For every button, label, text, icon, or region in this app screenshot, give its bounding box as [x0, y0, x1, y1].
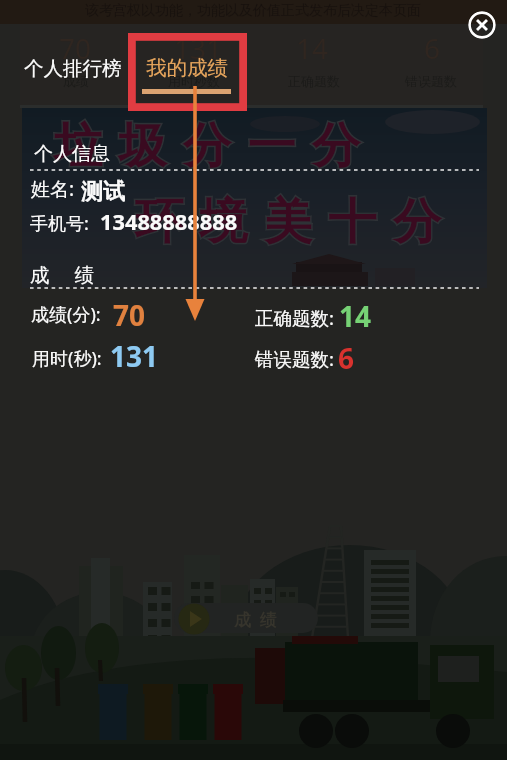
- staticText: 用时(秒):: [32, 346, 102, 371]
- staticText: 垃圾分一分: [54, 116, 377, 176]
- staticText: 成 绩: [30, 261, 95, 288]
- staticText: 垃圾分一分: [54, 116, 377, 176]
- staticText: 个人排行榜: [24, 56, 122, 81]
- staticText: 正确题数: [288, 73, 340, 89]
- staticText: 测试: [81, 178, 125, 206]
- staticText: 正确题数:: [255, 305, 334, 330]
- staticText: 姓名:: [31, 176, 75, 202]
- staticText: 成绩(分):: [31, 302, 101, 327]
- staticText: 6: [424, 29, 441, 67]
- button[interactable]: [20, 40, 132, 88]
- staticText: 131: [110, 337, 159, 375]
- staticText: 我的成绩: [146, 55, 228, 81]
- staticText: 环境美十分: [135, 192, 458, 252]
- staticText: 该考宫权以功能，功能以及价值正式发布后决定本页面: [85, 2, 421, 20]
- button[interactable]: Close: [468, 11, 496, 39]
- staticText: 70: [113, 296, 146, 334]
- staticText: 错误题数:: [255, 346, 334, 371]
- staticText: 环境美十分: [135, 192, 458, 252]
- staticText: 手机号:: [30, 211, 89, 236]
- staticText: 13488888888: [100, 207, 238, 237]
- staticText: 70: [59, 29, 92, 67]
- staticText: 6: [338, 339, 355, 377]
- staticText: 个人信息: [34, 142, 110, 166]
- staticText: 成 绩: [234, 608, 277, 631]
- staticText: 错误题数: [405, 73, 457, 89]
- button[interactable]: [136, 40, 236, 95]
- staticText: 用时秒数: [168, 73, 220, 89]
- staticText: 131: [174, 29, 223, 67]
- staticText: 14: [339, 297, 372, 335]
- staticText: 成绩: [63, 73, 89, 89]
